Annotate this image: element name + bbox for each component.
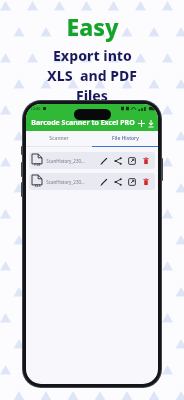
staticText: ScanHistory_230... — [46, 179, 85, 185]
button[interactable]: XLS — [29, 173, 155, 190]
staticText: Export into — [53, 46, 132, 65]
button[interactable]: Edit — [98, 176, 109, 187]
staticText: ScanHistory_230... — [46, 158, 85, 164]
staticText: Files — [76, 86, 108, 105]
staticText: File History — [112, 135, 139, 142]
button[interactable]: PDF — [29, 152, 155, 169]
staticText: Scanner — [49, 135, 69, 142]
staticText: Easy — [66, 11, 119, 42]
staticText: XLS and PDF — [47, 66, 137, 85]
staticText: 12:46 — [30, 106, 41, 111]
button[interactable]: Delete — [140, 176, 151, 187]
button[interactable]: Delete — [140, 155, 151, 166]
button[interactable]: Scanner — [26, 131, 92, 146]
button[interactable]: File History — [92, 131, 158, 146]
staticText: Barcode Scanner to Excel PRO — [31, 118, 135, 128]
button[interactable]: Edit — [98, 155, 109, 166]
button[interactable]: Open — [126, 155, 137, 166]
button[interactable]: Open — [126, 176, 137, 187]
button[interactable]: Add — [135, 117, 147, 129]
button[interactable]: Share — [112, 155, 123, 166]
staticText: PDF — [34, 162, 41, 167]
button[interactable]: Share — [112, 176, 123, 187]
staticText: XLS — [34, 183, 41, 188]
button[interactable]: Download — [149, 117, 153, 129]
